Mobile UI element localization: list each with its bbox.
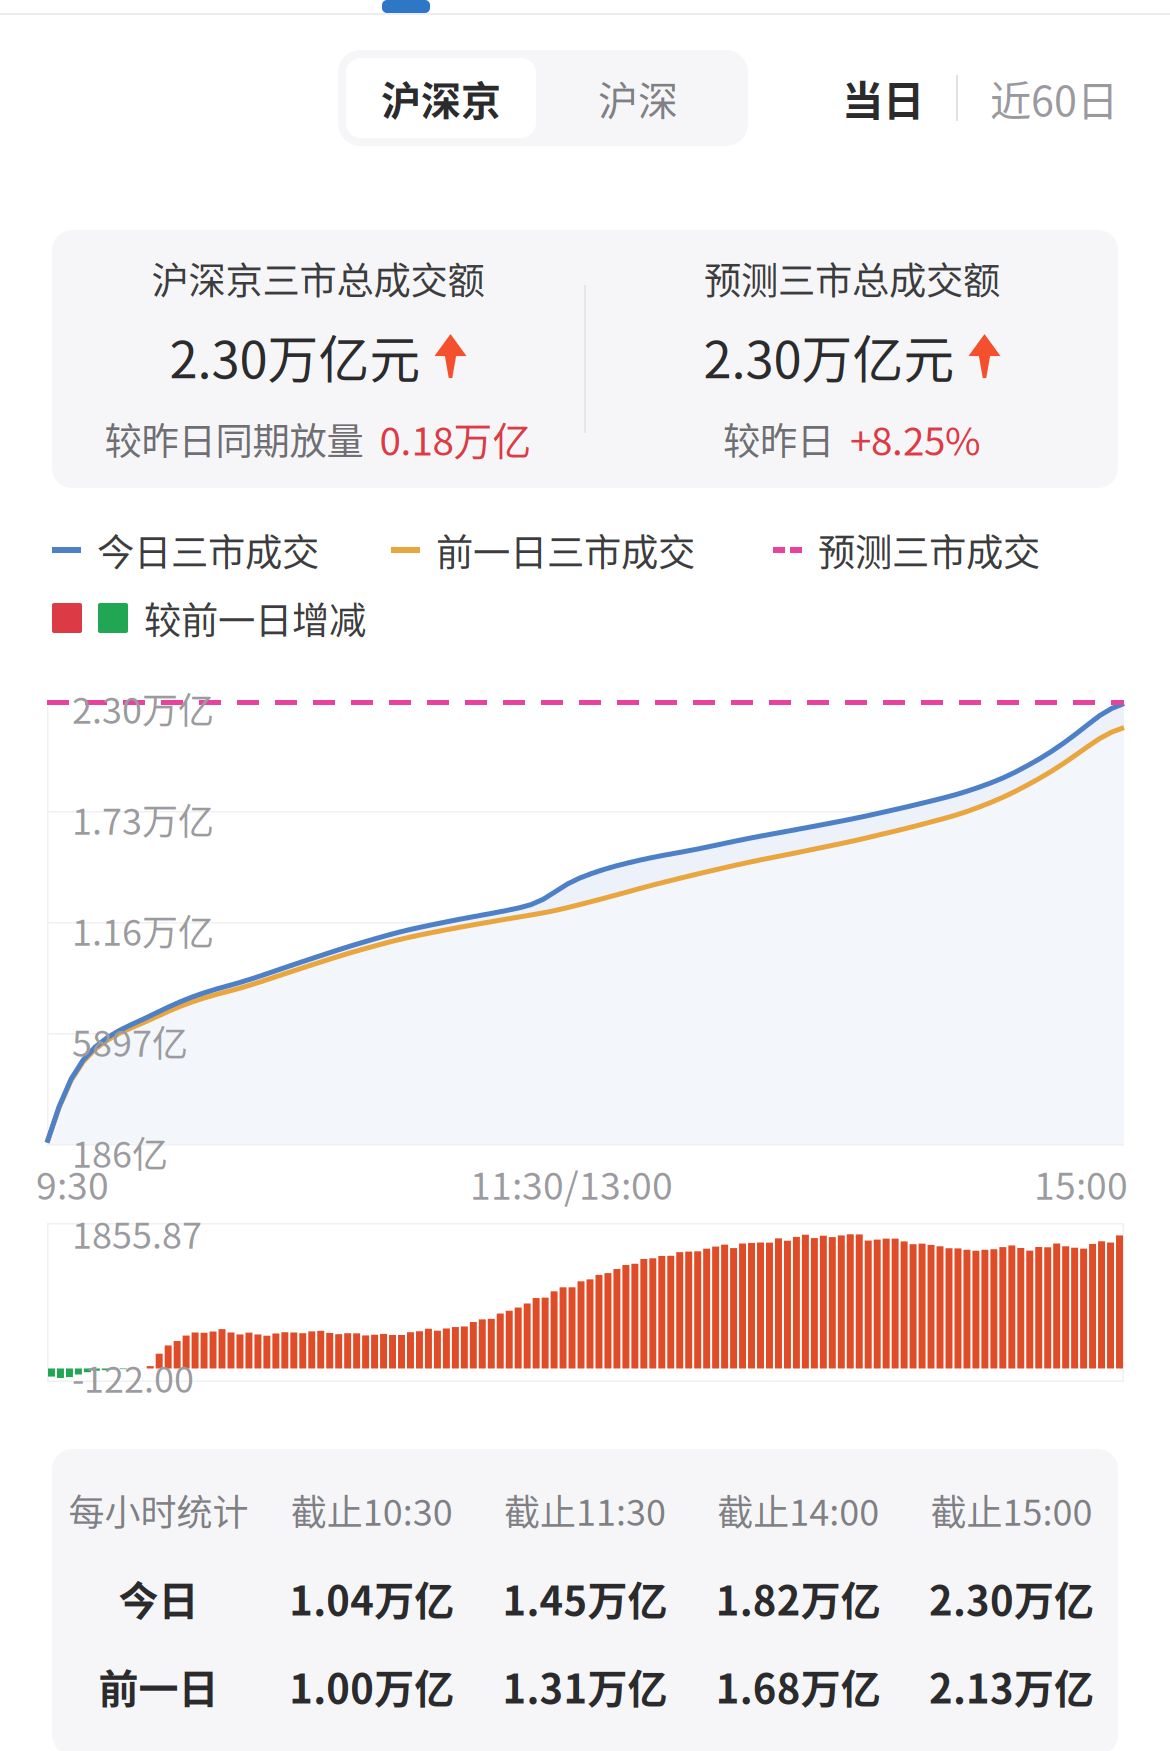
staticText: 2.30万亿元 [169,319,420,393]
staticText: 186亿 [72,1126,168,1178]
staticText: 沪深 [598,69,678,127]
staticText: 1.45万亿 [502,1569,667,1627]
staticText: -122.00 [72,1351,194,1403]
staticText: 11:30/13:00 [470,1156,673,1211]
button[interactable]: 当日 [842,68,924,128]
staticText: 15:00 [1034,1156,1128,1211]
staticText: 1855.87 [72,1207,202,1259]
staticText: 预测三市总成交额 [704,251,1000,305]
staticText: 预测三市成交 [818,523,1040,577]
staticText: 前一日 [99,1657,219,1715]
button[interactable]: 沪深 [536,58,740,138]
staticText: 2.30万亿元 [703,319,954,393]
staticText: 前一日三市成交 [436,523,695,577]
staticText: 截止10:30 [291,1484,453,1536]
staticText: 每小时统计 [69,1484,249,1536]
staticText: 较昨日同期放量 [104,412,363,466]
staticText: 截止14:00 [717,1484,879,1536]
staticText: 0.18万亿 [379,411,531,467]
staticText: 今日三市成交 [97,523,319,577]
staticText: 1.04万亿 [289,1569,454,1627]
staticText: 沪深京 [381,69,501,127]
staticText: 5897亿 [72,1015,188,1067]
staticText: 截止11:30 [504,1484,666,1536]
staticText: 当日 [842,68,924,128]
staticText: 1.00万亿 [289,1657,454,1715]
staticText: 1.31万亿 [502,1657,667,1715]
staticText: 近60日 [990,68,1118,128]
staticText: 截止15:00 [930,1484,1092,1536]
staticText: 2.30万亿 [72,682,214,734]
button[interactable]: 近60日 [990,68,1118,128]
staticText: 较前一日增减 [144,591,366,645]
staticText: +8.25% [850,411,981,467]
staticText: 1.82万亿 [716,1569,881,1627]
staticText: 1.16万亿 [72,904,214,956]
staticText: 较昨日 [723,412,834,466]
staticText: 2.30万亿 [929,1569,1094,1627]
staticText: 1.68万亿 [716,1657,881,1715]
staticText: 今日 [119,1569,199,1627]
staticText: 1.73万亿 [72,793,214,845]
staticText: 2.13万亿 [929,1657,1094,1715]
staticText: 沪深京三市总成交额 [151,251,484,305]
button[interactable]: 沪深京 [346,58,536,138]
staticText: 9:30 [36,1156,109,1211]
